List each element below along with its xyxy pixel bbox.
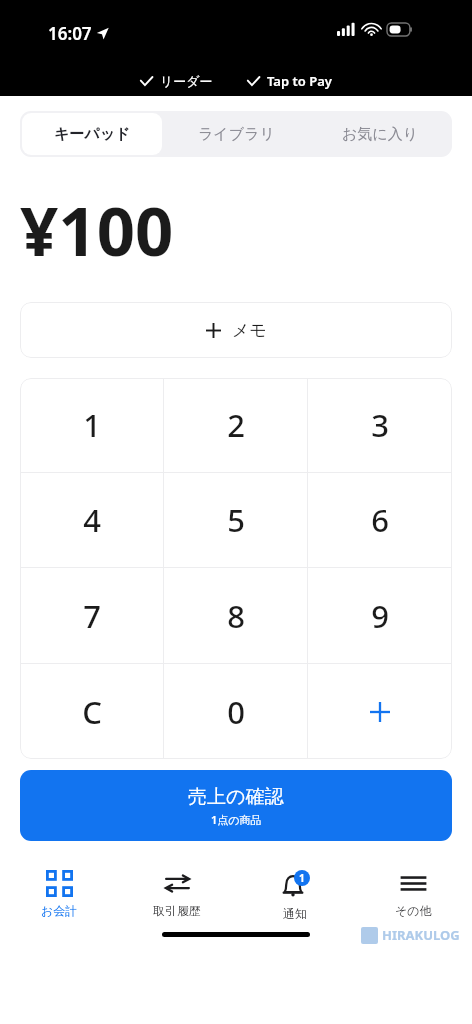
staticText: 9 [371,595,389,637]
button[interactable]: 0 [164,664,308,759]
other: 通知 [280,870,310,900]
button[interactable]: 6 [308,473,452,567]
other: 取引履歴 [164,870,191,897]
staticText: HIRAKULOG [382,926,460,944]
staticText: メモ [232,320,267,341]
staticText: ライブラリ [198,125,275,144]
button[interactable]: 2 [164,378,308,472]
staticText: 通知 [283,906,307,921]
staticText: 8 [227,595,245,637]
staticText: 6 [371,499,389,541]
button[interactable]: お会計 [0,862,118,924]
staticText: 7 [83,595,101,637]
button[interactable]: 取引履歴 [118,862,236,924]
staticText: C [82,691,102,733]
staticText: キーパッド [54,125,131,144]
button[interactable]: 7 [20,568,164,663]
other: お会計 [46,870,73,897]
staticText: 2 [227,404,245,446]
staticText: 16:07 [48,22,92,45]
staticText: 1点の商品 [211,812,262,827]
staticText: 1 [299,871,305,885]
button[interactable] [308,664,452,759]
staticText: リーダー [160,73,213,89]
button[interactable]: ライブラリ [166,113,306,155]
button[interactable]: 9 [308,568,452,663]
button[interactable]: 通知 [236,862,354,924]
button[interactable]: 1 [20,378,164,472]
staticText: Tap to Pay [267,72,332,90]
button[interactable]: キーパッド [22,113,162,155]
staticText: 5 [227,499,245,541]
staticText: 3 [371,404,389,446]
button[interactable]: お気に入り [310,113,450,155]
staticText: お会計 [41,903,78,918]
staticText: 4 [83,499,101,541]
button[interactable]: 5 [164,473,308,567]
button[interactable]: 4 [20,473,164,567]
button[interactable]: その他 [354,862,472,924]
button[interactable]: 売上の確認 [20,770,452,841]
staticText: 1 [83,404,101,446]
staticText: お気に入り [342,125,419,144]
button[interactable]: メモ [20,302,452,358]
staticText: ¥100 [20,184,174,275]
staticText: 0 [227,691,245,733]
button[interactable]: 3 [308,378,452,472]
button[interactable]: C [20,664,164,759]
staticText: その他 [395,903,432,918]
staticText: 取引履歴 [153,903,201,918]
staticText: 売上の確認 [188,785,284,809]
other: その他 [400,870,427,897]
button[interactable]: 8 [164,568,308,663]
